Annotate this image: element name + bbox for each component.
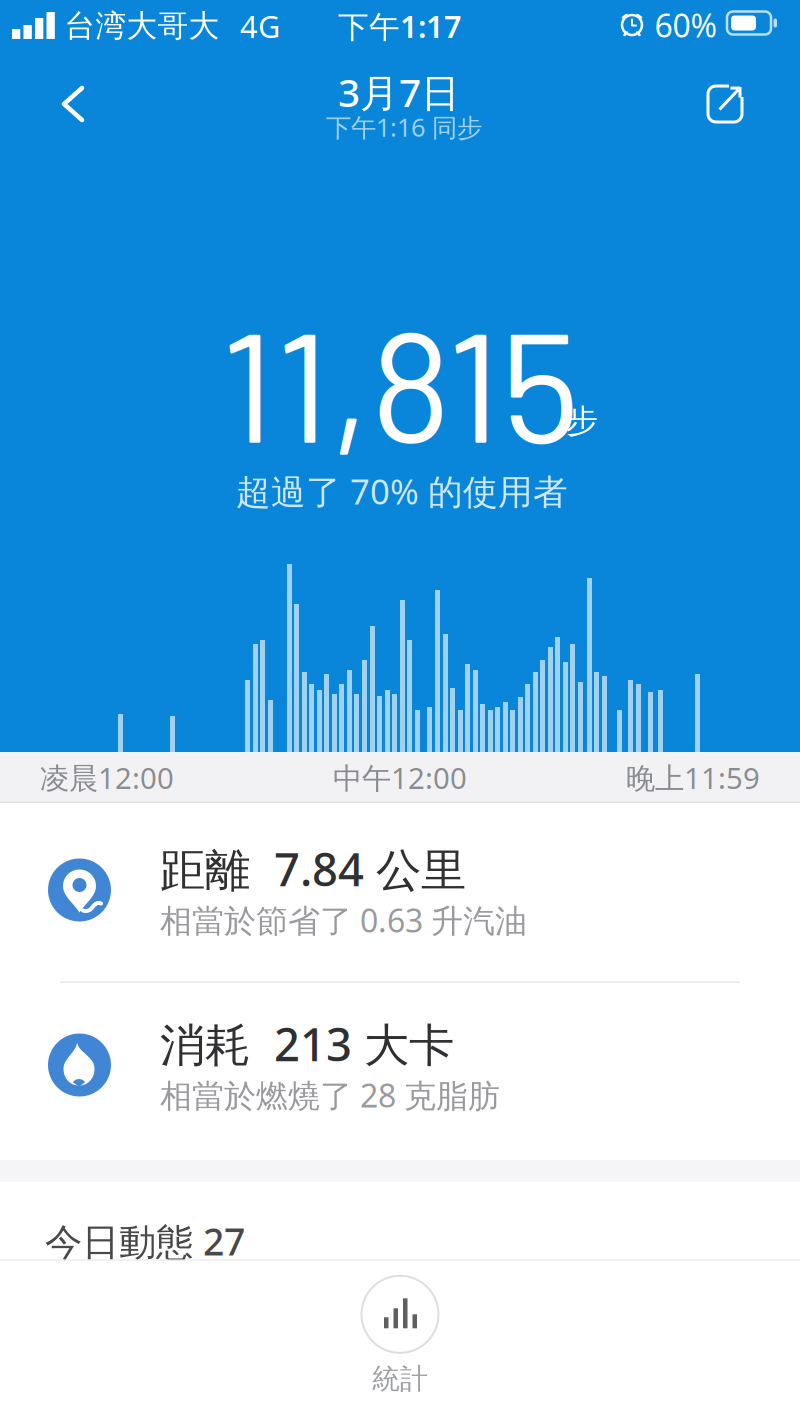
staticText: 距離 7.84 公里 [160,839,466,899]
staticText: 台湾大哥大 [64,7,219,45]
staticText: 統計 [372,1362,428,1396]
staticText: 晚上11:59 [626,758,760,797]
button[interactable] [703,82,747,126]
staticText: 相當於節省了 0.63 升汽油 [160,899,527,941]
staticText: 下午1:16 同步 [326,110,482,144]
staticText: 今日動態 27 [45,1216,245,1266]
staticText: 步 [566,401,598,441]
staticText: 超過了 70% 的使用者 [236,468,568,514]
button[interactable]: 消耗 213 大卡 [0,1014,800,1116]
staticText: 相當於燃燒了 28 克脂肪 [160,1074,500,1116]
staticText: 11,815 [220,288,579,474]
button[interactable]: 統計 [361,1276,438,1396]
button[interactable] [59,84,89,124]
staticText: 下午1:17 [338,6,462,46]
staticText: 60% [654,4,717,46]
staticText: 凌晨12:00 [40,758,174,797]
staticText: 消耗 213 大卡 [160,1014,454,1074]
staticText: 3月7日 [338,66,460,118]
staticText: 4G [240,6,280,46]
staticText: 中午12:00 [333,758,467,797]
button[interactable]: 距離 7.84 公里 [0,839,800,941]
